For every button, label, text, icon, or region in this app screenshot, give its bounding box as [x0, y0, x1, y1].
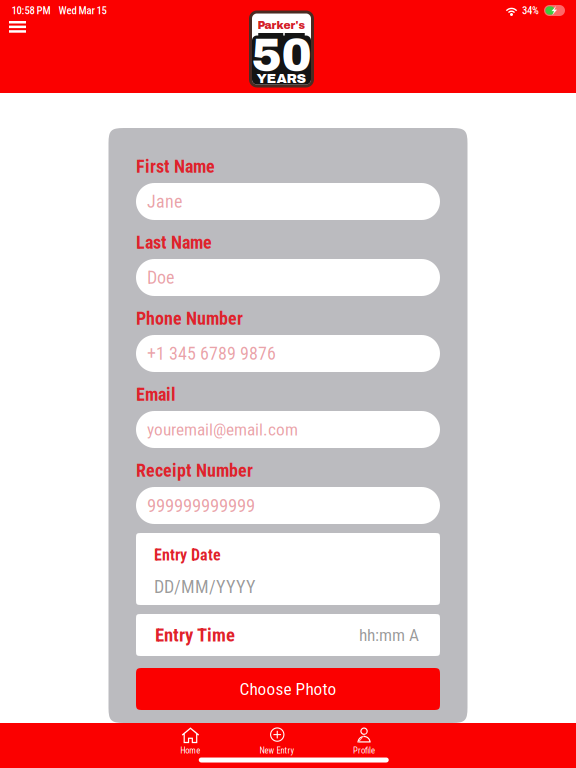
staticText: Email — [136, 384, 176, 405]
button[interactable]: Entry Time — [136, 614, 440, 656]
staticText: Last Name — [136, 232, 212, 253]
staticText: DD/MM/YYYY — [154, 576, 255, 597]
staticText: Jane — [147, 191, 182, 212]
button[interactable]: Menu — [0, 12, 38, 42]
staticText: 50 — [251, 31, 311, 80]
staticText: 10:58 PM — [11, 4, 50, 17]
button[interactable]: Choose Photo — [136, 668, 440, 710]
button[interactable]: Entry Date — [136, 533, 440, 605]
staticText: Choose Photo — [239, 679, 336, 699]
button[interactable]: 999999999999 — [136, 487, 440, 524]
staticText: Phone Number — [136, 308, 243, 329]
staticText: Home — [180, 745, 200, 756]
button[interactable]: Doe — [136, 259, 440, 296]
staticText: youremail@email.com — [147, 419, 298, 440]
staticText: Entry Time — [155, 624, 235, 646]
staticText: Receipt Number — [136, 460, 253, 481]
staticText: hh:mm A — [359, 625, 419, 645]
staticText: Doe — [147, 267, 174, 288]
staticText: First Name — [136, 156, 215, 177]
button[interactable]: New Entry — [234, 726, 320, 754]
staticText: New Entry — [260, 745, 295, 756]
staticText: Wed Mar 15 — [58, 4, 106, 17]
staticText: +1 345 6789 9876 — [147, 343, 276, 364]
staticText: Entry Date — [154, 546, 221, 564]
staticText: Parker's — [257, 20, 305, 31]
staticText: Profile — [353, 745, 375, 756]
staticText: YEARS — [256, 71, 306, 86]
staticText: 999999999999 — [147, 495, 255, 516]
button[interactable]: Jane — [136, 183, 440, 220]
button[interactable]: +1 345 6789 9876 — [136, 335, 440, 372]
staticText: 34% — [522, 4, 539, 17]
button[interactable]: Home — [147, 726, 234, 754]
button[interactable]: youremail@email.com — [136, 411, 440, 448]
button[interactable]: Profile — [320, 726, 407, 754]
